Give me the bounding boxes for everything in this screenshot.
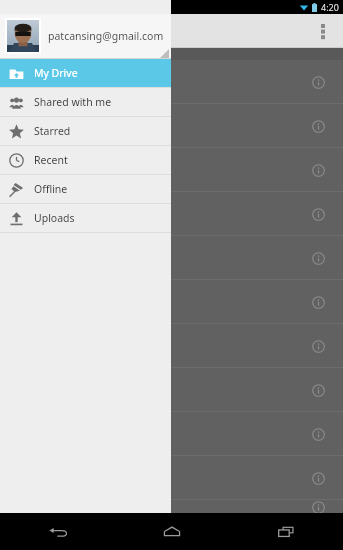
staticText: Google Drive	[68, 21, 154, 40]
button[interactable]: Open navigation drawer	[8, 18, 34, 44]
button[interactable]: Info	[307, 291, 329, 313]
button[interactable]: Info	[0, 500, 343, 515]
staticText: Starred	[34, 124, 71, 138]
button[interactable]: Info	[0, 280, 343, 323]
button[interactable]: Info	[0, 456, 343, 499]
button[interactable]: Info	[0, 236, 343, 279]
button[interactable]: Info	[307, 159, 329, 181]
button[interactable]: Info	[0, 412, 343, 455]
button[interactable]: Back	[0, 513, 115, 550]
button[interactable]: Info	[307, 71, 329, 93]
staticText: Uploads	[34, 211, 75, 225]
button[interactable]: Info	[307, 247, 329, 269]
button[interactable]: Info	[307, 335, 329, 357]
button[interactable]: Info	[307, 467, 329, 489]
staticText: Shared with me	[34, 95, 112, 109]
button[interactable]: My Drive	[0, 59, 171, 87]
button[interactable]: Info	[0, 324, 343, 367]
staticText: Recent	[34, 153, 68, 167]
button[interactable]: Info	[307, 500, 329, 515]
button[interactable]: Home	[115, 513, 229, 550]
button[interactable]: Recent	[0, 146, 171, 174]
button[interactable]: Info	[0, 104, 343, 147]
button[interactable]: patcansing@gmail.com	[0, 14, 171, 58]
staticText: Offline	[34, 182, 68, 196]
staticText: patcansing@gmail.com	[48, 29, 164, 43]
staticText: My Drive	[34, 66, 78, 80]
button[interactable]: Info	[307, 423, 329, 445]
button[interactable]: Shared with me	[0, 88, 171, 116]
button[interactable]: Recent apps	[229, 513, 343, 550]
button[interactable]: Info	[307, 115, 329, 137]
button[interactable]: Info	[0, 60, 343, 103]
button[interactable]: Info	[307, 379, 329, 401]
button[interactable]: Starred	[0, 117, 171, 145]
button[interactable]: Uploads	[0, 204, 171, 232]
button[interactable]: Info	[0, 148, 343, 191]
staticText: 4:20	[321, 1, 339, 13]
button[interactable]: Info	[0, 368, 343, 411]
button[interactable]: More options	[307, 15, 339, 47]
button[interactable]: Offline	[0, 175, 171, 203]
button[interactable]: Info	[0, 192, 343, 235]
button[interactable]: Info	[307, 203, 329, 225]
